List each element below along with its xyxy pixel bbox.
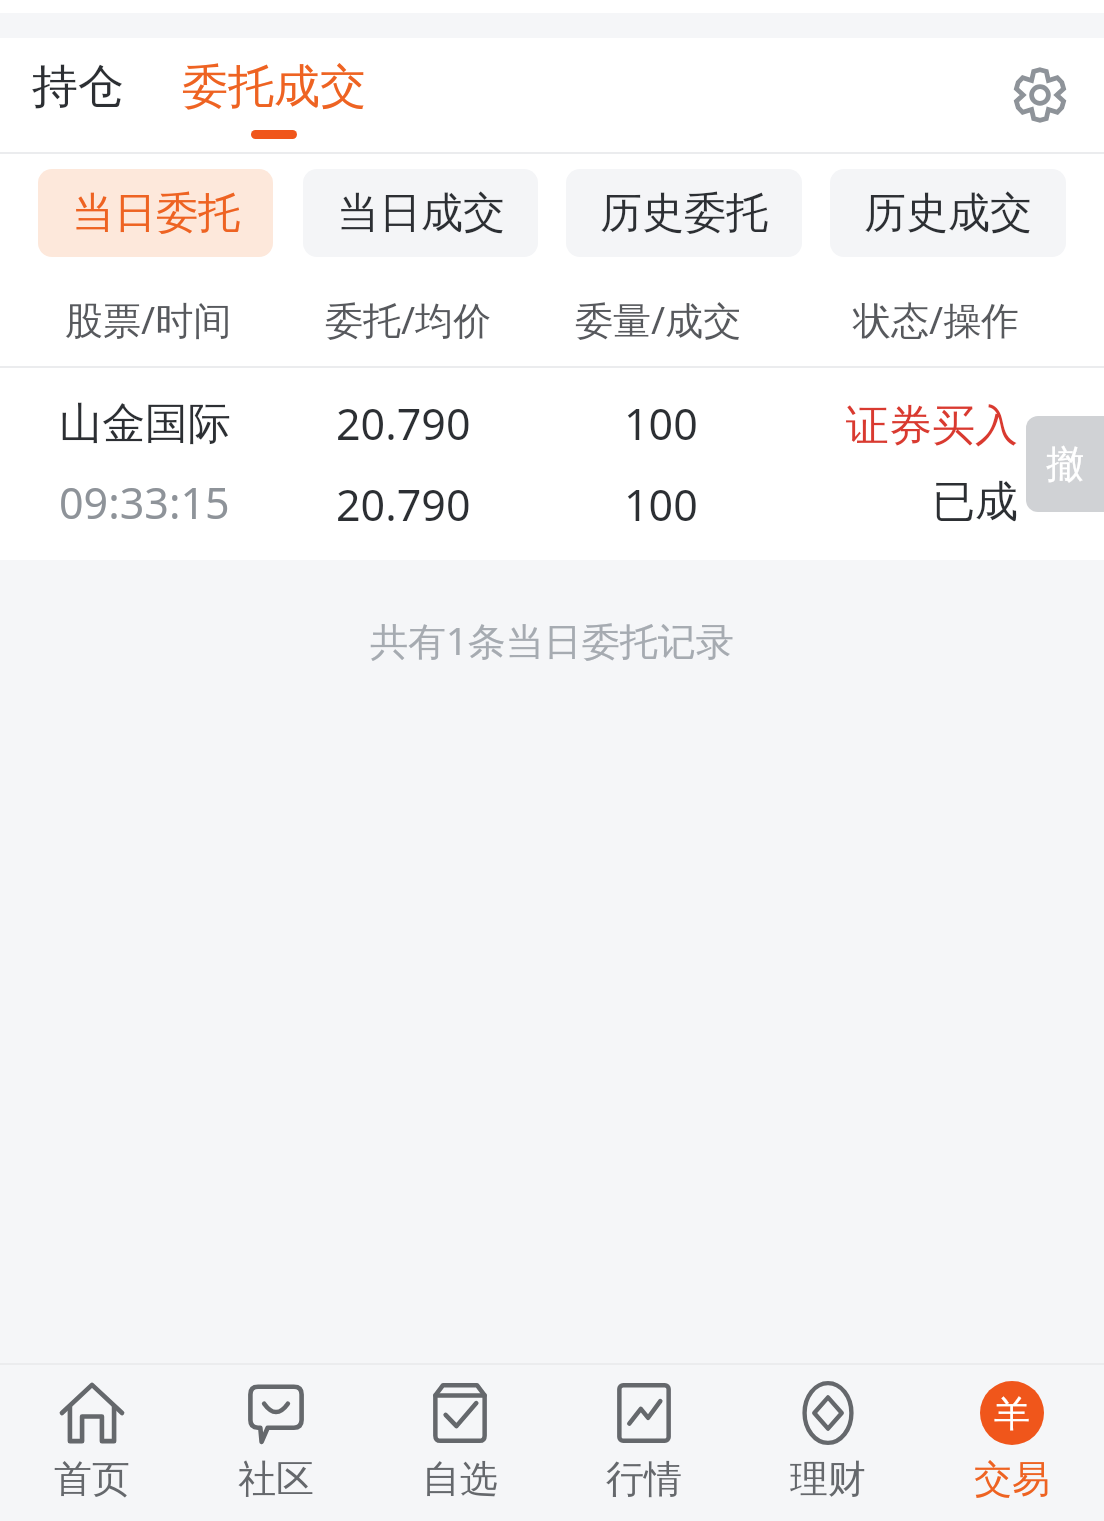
button[interactable]: 羊 xyxy=(920,1365,1104,1521)
button[interactable]: 山金国际 xyxy=(0,368,1104,560)
staticText: 证券买入 xyxy=(846,399,1018,453)
button[interactable]: 当日成交 xyxy=(303,169,538,257)
staticText: 委托/均价 xyxy=(325,293,492,345)
staticText: 100 xyxy=(624,475,698,534)
staticText: 100 xyxy=(624,394,698,453)
staticText: 首页 xyxy=(54,1455,130,1503)
staticText: 状态/操作 xyxy=(853,293,1020,345)
staticText: 20.790 xyxy=(336,394,471,453)
staticText: 委量/成交 xyxy=(575,293,742,345)
staticText: 已成 xyxy=(932,475,1018,529)
button[interactable]: 自选 xyxy=(368,1365,552,1521)
button[interactable]: 撤 xyxy=(1026,416,1104,512)
staticText: 股票/时间 xyxy=(65,293,232,345)
staticText: 社区 xyxy=(238,1455,314,1503)
staticText: 理财 xyxy=(790,1455,866,1503)
staticText: 委托成交 xyxy=(182,58,366,116)
button[interactable]: 委托成交 xyxy=(168,38,380,152)
staticText: 持仓 xyxy=(32,58,124,116)
button[interactable]: 历史委托 xyxy=(566,169,802,257)
staticText: 行情 xyxy=(606,1455,682,1503)
staticText: 羊 xyxy=(994,1391,1030,1436)
staticText: 历史委托 xyxy=(600,187,768,240)
staticText: 共有1条当日委托记录 xyxy=(370,614,734,666)
staticText: 自选 xyxy=(422,1455,498,1503)
button[interactable]: 首页 xyxy=(0,1365,184,1521)
staticText: 交易 xyxy=(974,1455,1050,1503)
button[interactable]: 理财 xyxy=(736,1365,920,1521)
button[interactable]: 历史成交 xyxy=(830,169,1066,257)
button[interactable]: 行情 xyxy=(552,1365,736,1521)
button[interactable]: 当日委托 xyxy=(38,169,273,257)
button[interactable]: 社区 xyxy=(184,1365,368,1521)
staticText: 当日委托 xyxy=(72,187,240,240)
button[interactable]: 持仓 xyxy=(14,38,142,152)
staticText: 20.790 xyxy=(336,475,471,534)
staticText: 09:33:15 xyxy=(59,473,230,532)
staticText: 山金国际 xyxy=(59,397,231,451)
button[interactable]: Settings xyxy=(1000,55,1080,135)
staticText: 当日成交 xyxy=(337,187,505,240)
staticText: 历史成交 xyxy=(864,187,1032,240)
staticText: 撤 xyxy=(1046,440,1084,488)
